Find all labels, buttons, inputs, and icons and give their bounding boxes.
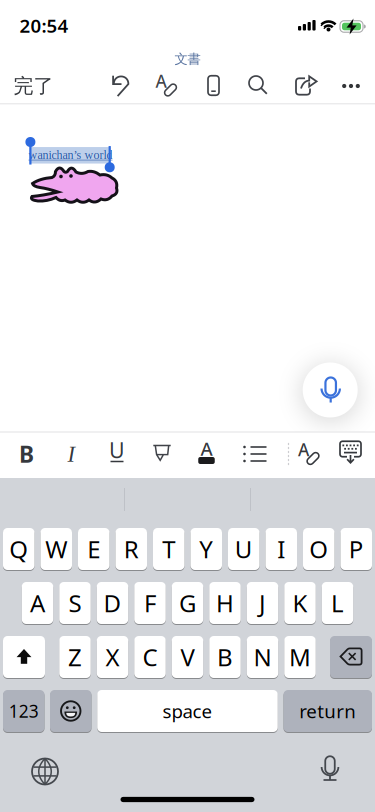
button[interactable] [289, 69, 323, 103]
button[interactable]: U [99, 433, 135, 473]
staticText: H [216, 587, 234, 619]
button[interactable]: H [209, 581, 241, 624]
staticText: X [105, 641, 119, 673]
button[interactable]: D [97, 581, 128, 624]
staticText: G [179, 587, 196, 619]
button[interactable] [50, 689, 91, 732]
button[interactable]: B [8, 434, 44, 474]
button[interactable]: Y [190, 527, 222, 570]
button[interactable]: W [40, 527, 72, 570]
button[interactable]: A [22, 581, 53, 624]
button[interactable]: F [134, 581, 166, 624]
button[interactable]: V [172, 635, 203, 678]
button[interactable] [104, 68, 138, 102]
staticText: V [180, 641, 194, 673]
button[interactable]: T [153, 527, 184, 570]
staticText: I [277, 533, 285, 565]
button[interactable]: I [53, 434, 89, 474]
staticText: N [253, 641, 271, 673]
staticText: O [309, 533, 328, 565]
staticText: T [162, 533, 175, 565]
staticText: R [124, 533, 139, 565]
staticText: A [298, 438, 309, 461]
staticText: F [144, 587, 156, 619]
staticText: wanichan’s world [28, 148, 112, 162]
button[interactable]: N [247, 635, 278, 678]
staticText: Z [68, 641, 82, 673]
button[interactable] [3, 635, 45, 678]
button[interactable]: space [97, 689, 278, 732]
button[interactable]: K [284, 581, 316, 624]
staticText: K [292, 587, 307, 619]
button[interactable] [332, 434, 368, 474]
staticText: A [200, 436, 212, 461]
button[interactable]: L [322, 581, 353, 624]
button[interactable]: Z [59, 635, 91, 678]
staticText: A [30, 587, 45, 619]
button[interactable] [308, 749, 352, 793]
staticText: Q [9, 533, 28, 565]
button[interactable]: X [97, 635, 128, 678]
staticText: C [142, 641, 157, 673]
button[interactable]: I [265, 527, 297, 570]
staticText: L [331, 587, 344, 619]
button[interactable] [241, 68, 275, 102]
button[interactable] [330, 635, 372, 678]
button[interactable]: M [284, 635, 316, 678]
staticText: S [68, 587, 81, 619]
staticText: I [67, 441, 75, 466]
button[interactable] [334, 69, 368, 103]
button[interactable]: J [247, 581, 278, 624]
button[interactable]: Q [3, 527, 34, 570]
staticText: return [299, 699, 356, 723]
staticText: space [162, 699, 212, 723]
staticText: 文書 [174, 51, 200, 67]
button[interactable]: 123 [3, 689, 44, 732]
button[interactable]: A [290, 434, 326, 474]
staticText: P [349, 533, 364, 565]
staticText: U [235, 533, 253, 565]
button[interactable]: G [172, 581, 203, 624]
staticText: W [45, 533, 67, 565]
button[interactable]: O [303, 527, 334, 570]
staticText: 20:54 [19, 13, 68, 38]
staticText: A [155, 69, 166, 92]
button[interactable] [23, 749, 67, 793]
staticText: 完了 [13, 74, 53, 98]
staticText: M [289, 641, 311, 673]
button[interactable]: B [209, 635, 241, 678]
button[interactable]: C [134, 635, 166, 678]
staticText: U [109, 436, 125, 464]
staticText: B [217, 641, 233, 673]
staticText: J [259, 587, 266, 619]
button[interactable] [303, 362, 358, 417]
staticText: D [103, 587, 121, 619]
button[interactable]: 完了 [3, 69, 63, 103]
button[interactable]: S [59, 581, 91, 624]
button[interactable]: E [78, 527, 109, 570]
staticText: B [19, 439, 34, 469]
staticText: 123 [9, 699, 39, 722]
button[interactable] [144, 434, 180, 474]
button[interactable] [196, 68, 230, 102]
staticText: E [87, 533, 100, 565]
button[interactable]: A [188, 434, 224, 474]
button[interactable]: U [228, 527, 259, 570]
button[interactable] [234, 434, 270, 474]
button[interactable]: P [340, 527, 372, 570]
button[interactable]: return [283, 689, 372, 732]
staticText: Y [199, 533, 213, 565]
button[interactable]: A [149, 68, 183, 102]
button[interactable]: R [115, 527, 147, 570]
